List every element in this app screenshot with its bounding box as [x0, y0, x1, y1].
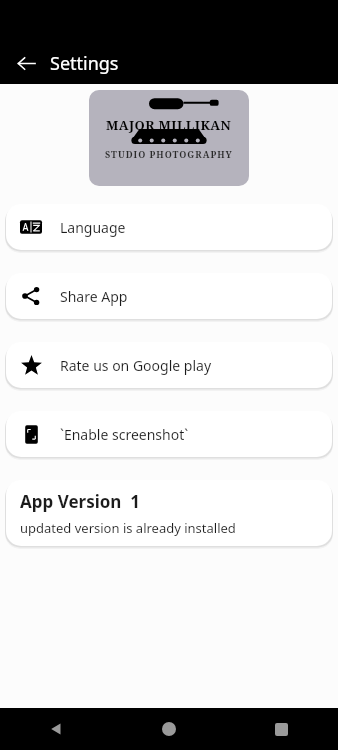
staticText: updated version is already installed	[20, 519, 236, 537]
staticText: MAJOR MILLIKAN	[106, 116, 232, 134]
staticText: `Enable screenshot`	[60, 425, 189, 444]
staticText: STUDIO PHOTOGRAPHY	[105, 148, 233, 160]
staticText: Share App	[60, 287, 128, 306]
button[interactable]: Major Millikan Studio Photography logo	[89, 90, 249, 186]
staticText: Rate us on Google play	[60, 356, 212, 375]
button[interactable]: Recents	[225, 708, 338, 750]
staticText: Language	[60, 218, 126, 237]
button[interactable]: Back	[0, 708, 112, 750]
button[interactable]: Rate us on Google play	[6, 342, 332, 388]
button[interactable]: Share App	[6, 273, 332, 319]
staticText: Settings	[50, 51, 119, 76]
button[interactable]: Home	[112, 708, 225, 750]
button[interactable]: Language	[6, 204, 332, 250]
button[interactable]: `Enable screenshot`	[6, 411, 332, 457]
staticText: App Version 1	[20, 490, 140, 513]
button[interactable]: Back	[10, 47, 42, 79]
button[interactable]: App Version 1	[6, 480, 332, 546]
